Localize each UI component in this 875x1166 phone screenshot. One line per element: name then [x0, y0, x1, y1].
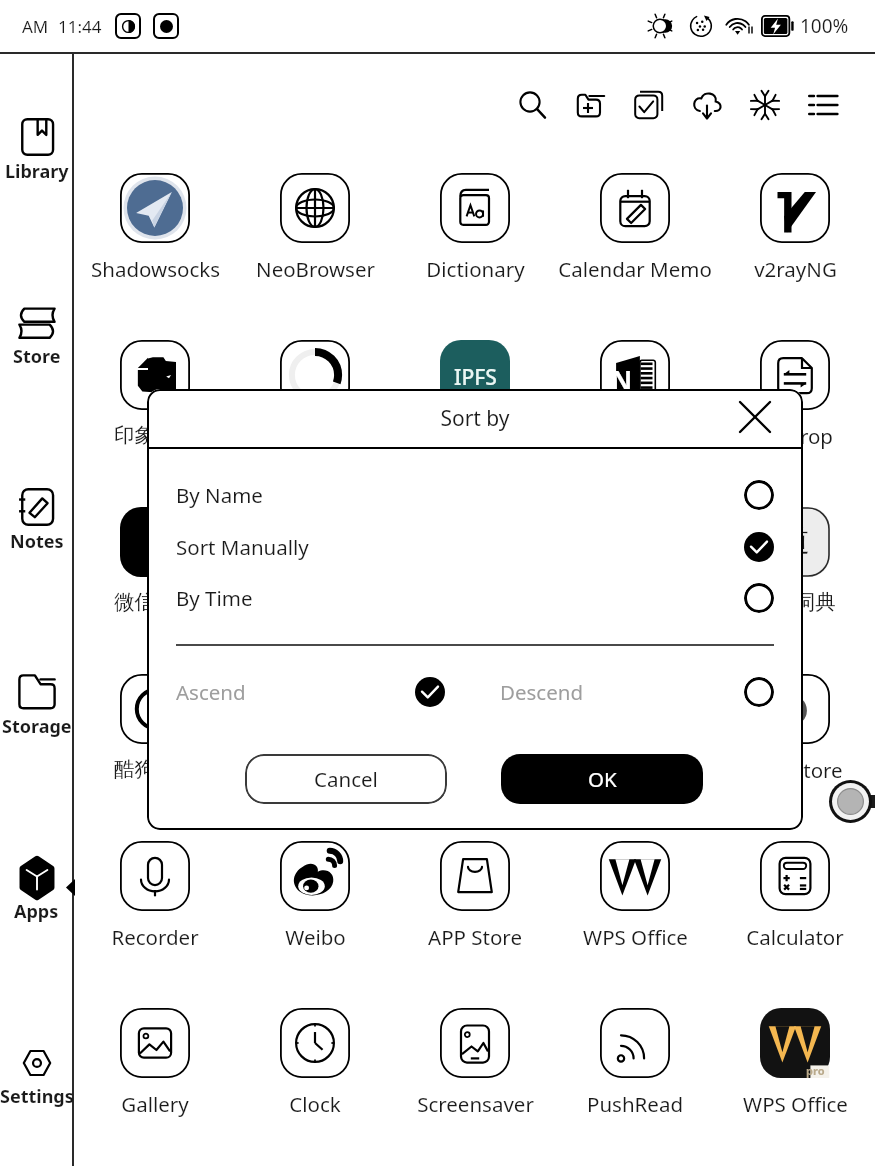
button[interactable]: [440, 835, 510, 945]
staticText: Weibo: [285, 923, 346, 951]
button[interactable]: N: [600, 334, 670, 444]
button[interactable]: [280, 1002, 350, 1112]
button[interactable]: pro: [760, 1002, 830, 1112]
button[interactable]: Storage: [0, 673, 83, 739]
staticText: Notes: [10, 529, 64, 554]
button[interactable]: By Time: [147, 574, 803, 622]
staticText: OK: [588, 765, 617, 793]
staticText: By Time: [176, 584, 253, 612]
button[interactable]: [760, 167, 830, 277]
staticText: Screensaver: [417, 1090, 534, 1118]
button[interactable]: Refresh mode: [115, 13, 141, 39]
button[interactable]: [280, 334, 350, 444]
staticText: Sort Manually: [176, 533, 309, 561]
button[interactable]: Brightness: [645, 11, 675, 41]
button[interactable]: 道: [760, 501, 830, 611]
staticText: 11:44: [58, 15, 102, 38]
button[interactable]: Cancel: [245, 754, 447, 804]
staticText: NeoBrowser: [256, 255, 375, 283]
staticText: Shadowsocks: [91, 255, 220, 283]
button[interactable]: Refresh: [743, 83, 787, 127]
button[interactable]: [120, 334, 190, 444]
button[interactable]: Navigation ball: [829, 780, 872, 823]
staticText: 100%: [800, 13, 849, 39]
staticText: Calendar Memo: [558, 255, 712, 283]
staticText: N: [611, 362, 633, 397]
button[interactable]: [440, 167, 510, 277]
staticText: 印象笔记: [114, 422, 196, 448]
staticText: Gallery: [121, 1090, 189, 1118]
button[interactable]: [600, 167, 670, 277]
staticText: Library: [5, 159, 69, 184]
staticText: v2rayNG: [754, 255, 837, 283]
staticText: Recorder: [111, 923, 199, 951]
button[interactable]: [600, 1002, 670, 1112]
button[interactable]: Settings: [0, 1043, 83, 1109]
staticText: App Store: [748, 756, 843, 784]
button[interactable]: List view: [801, 83, 845, 127]
button[interactable]: Refresh mode: [686, 11, 716, 41]
button[interactable]: OK: [501, 754, 703, 804]
staticText: By Name: [176, 481, 263, 509]
button[interactable]: IPFS: [440, 334, 510, 444]
button[interactable]: Wi-Fi: [725, 11, 755, 41]
button[interactable]: Record: [153, 13, 179, 39]
button[interactable]: [120, 835, 190, 945]
button[interactable]: [280, 835, 350, 945]
button[interactable]: Apps: [0, 858, 83, 924]
button[interactable]: New folder: [569, 83, 613, 127]
staticText: Settings: [0, 1084, 74, 1109]
button[interactable]: [760, 835, 830, 945]
staticText: Clock: [289, 1090, 341, 1118]
staticText: 道: [780, 522, 810, 560]
staticText: Storage: [2, 714, 72, 739]
staticText: Descend: [500, 678, 584, 706]
button[interactable]: [600, 835, 670, 945]
staticText: PushRead: [587, 1090, 683, 1118]
staticText: AM: [22, 15, 49, 38]
staticText: 有道词典: [754, 589, 836, 615]
staticText: WPS Office: [743, 1090, 848, 1118]
staticText: AirDrop: [758, 422, 833, 450]
button[interactable]: Library: [0, 118, 83, 184]
staticText: Apps: [14, 899, 59, 924]
button[interactable]: Ascend: [176, 668, 445, 716]
staticText: Dictionary: [426, 255, 525, 283]
staticText: 酷狗音乐: [114, 756, 196, 782]
button[interactable]: [120, 167, 190, 277]
button[interactable]: [760, 334, 830, 444]
button[interactable]: [760, 668, 830, 778]
button[interactable]: Descend: [500, 668, 584, 716]
button[interactable]: Notes: [0, 488, 83, 554]
staticText: Ascend: [176, 678, 246, 706]
button[interactable]: Select: [627, 83, 671, 127]
staticText: Store: [13, 344, 61, 369]
button[interactable]: Store: [0, 303, 83, 369]
button[interactable]: Download: [685, 83, 729, 127]
button[interactable]: [120, 501, 190, 611]
button[interactable]: Sort Manually: [147, 523, 803, 571]
button[interactable]: [440, 1002, 510, 1112]
staticText: WPS Office: [583, 923, 688, 951]
staticText: pro: [806, 1063, 825, 1078]
button[interactable]: Close: [732, 394, 778, 440]
staticText: Sort by: [147, 404, 803, 433]
button[interactable]: [120, 1002, 190, 1112]
staticText: IPFS: [454, 422, 496, 450]
staticText: APP Store: [428, 923, 522, 951]
staticText: Calculator: [746, 923, 844, 951]
button[interactable]: Search: [511, 83, 555, 127]
staticText: 微信读书: [114, 589, 196, 615]
button[interactable]: By Name: [147, 471, 803, 519]
button[interactable]: [120, 668, 190, 778]
button[interactable]: [280, 167, 350, 277]
staticText: IPFS: [454, 363, 497, 392]
staticText: Cancel: [314, 765, 378, 793]
